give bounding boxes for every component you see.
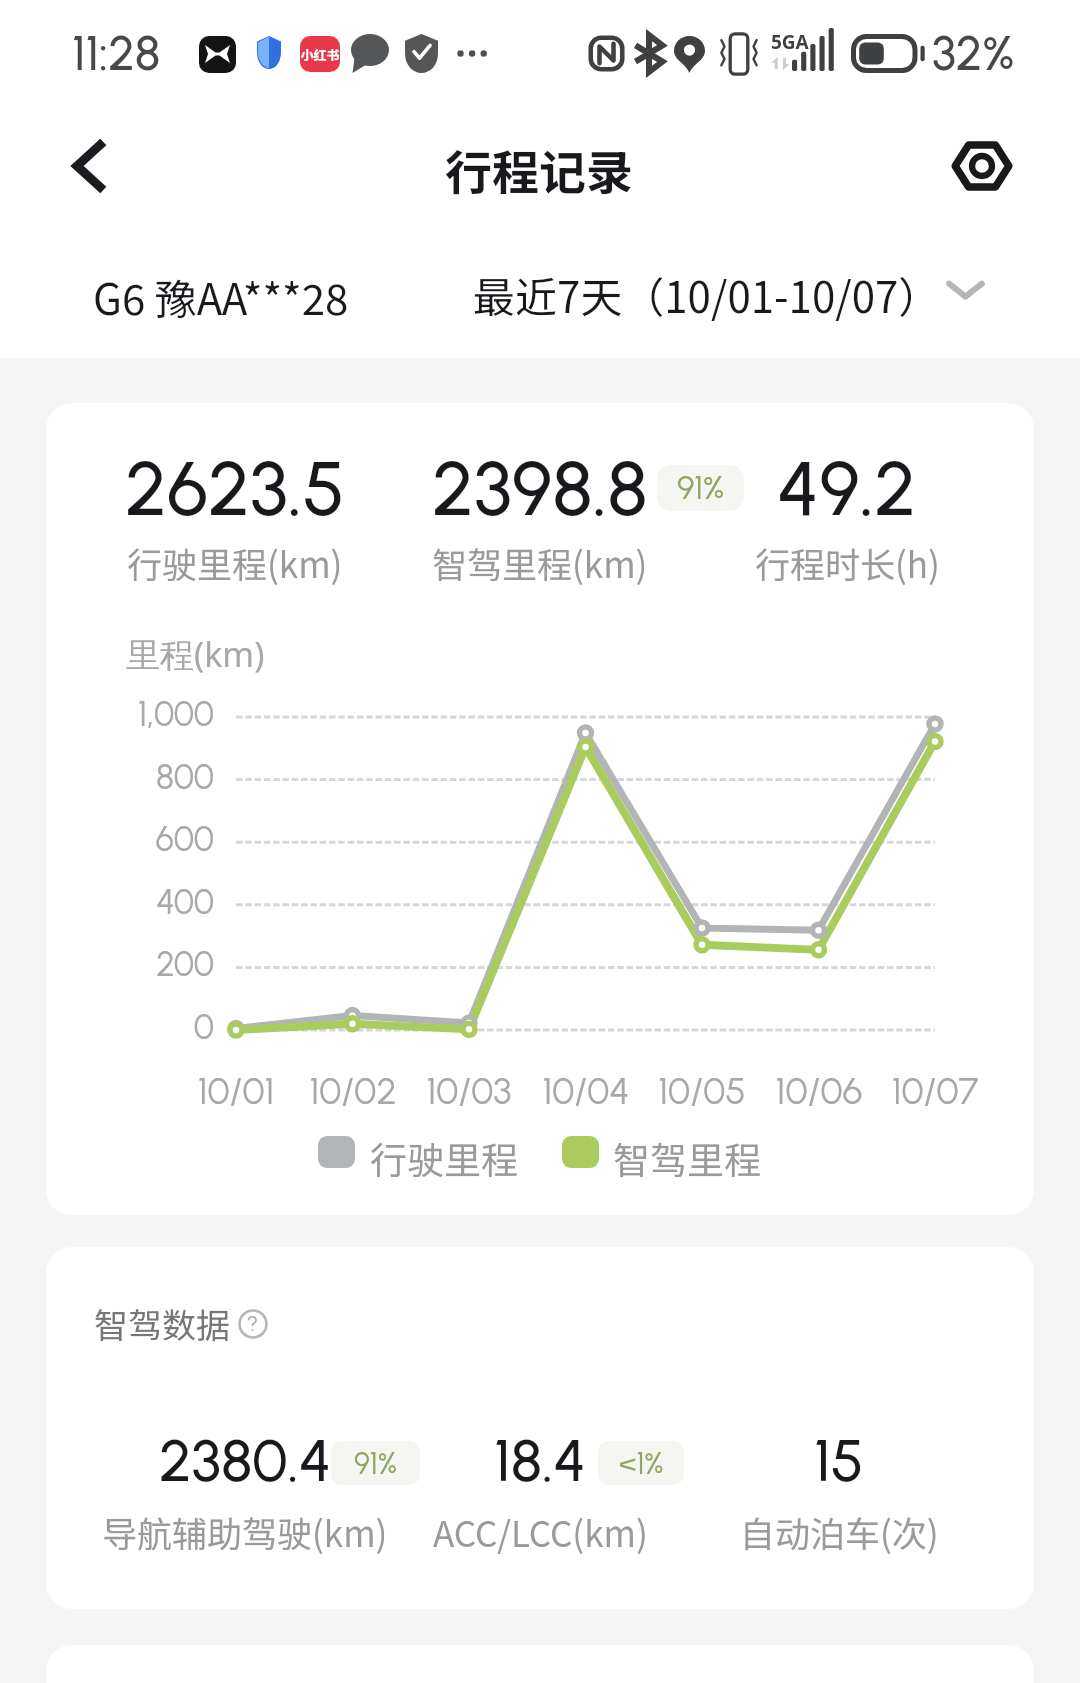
staticText: 小红书 xyxy=(300,45,340,64)
staticText: 行程时长(h) xyxy=(755,537,940,588)
staticText: 10/07 xyxy=(855,1069,1015,1113)
staticText: 32% xyxy=(932,24,1015,82)
staticText: 最近7天（10/01-10/07） xyxy=(473,264,941,325)
staticText: 2623.5 xyxy=(125,443,345,534)
staticText: 10/06 xyxy=(739,1069,899,1113)
staticText: 5GA xyxy=(771,29,809,55)
staticText: 91% xyxy=(354,1445,397,1481)
staticText: 行程记录 xyxy=(445,135,633,203)
staticText: 0 xyxy=(46,1007,214,1048)
staticText: <1% xyxy=(619,1445,664,1481)
button[interactable]: G6 豫AA***28 xyxy=(93,266,349,327)
staticText: 智驾里程(km) xyxy=(432,537,648,588)
button[interactable]: 智驾数据 xyxy=(94,1299,267,1348)
staticText: 49.2 xyxy=(777,443,917,534)
staticText: 15 xyxy=(814,1425,864,1496)
staticText: 行驶里程(km) xyxy=(127,537,343,588)
staticText: 91% xyxy=(677,468,725,508)
staticText: ACC/LCC(km) xyxy=(433,1506,648,1557)
button[interactable]: 最近7天（10/01-10/07） xyxy=(473,264,941,325)
staticText: 导航辅助驾驶(km) xyxy=(102,1506,388,1557)
staticText: 2380.4 xyxy=(159,1425,332,1496)
staticText: 2398.8 xyxy=(432,443,648,534)
button[interactable]: Settings xyxy=(942,126,1022,206)
staticText: 行驶里程 xyxy=(370,1131,518,1185)
staticText: 18.4 xyxy=(494,1425,587,1496)
staticText: 智驾里程 xyxy=(613,1131,761,1185)
staticText: 11:28 xyxy=(72,24,161,82)
staticText: 里程(km) xyxy=(126,631,265,677)
staticText: 自动泊车(次) xyxy=(740,1506,939,1557)
staticText: 400 xyxy=(46,882,214,923)
staticText: 1,000 xyxy=(46,694,214,735)
staticText: 10/02 xyxy=(273,1069,433,1113)
staticText: 800 xyxy=(46,757,214,798)
staticText: 10/03 xyxy=(389,1069,549,1113)
button[interactable]: Back xyxy=(48,126,128,206)
staticText: 10/01 xyxy=(156,1069,316,1113)
staticText: 10/05 xyxy=(622,1069,782,1113)
staticText: 智驾数据 xyxy=(94,1299,230,1348)
staticText: ? xyxy=(247,1310,259,1336)
staticText: 200 xyxy=(46,944,214,985)
staticText: 600 xyxy=(46,819,214,860)
staticText: 10/04 xyxy=(506,1069,666,1113)
